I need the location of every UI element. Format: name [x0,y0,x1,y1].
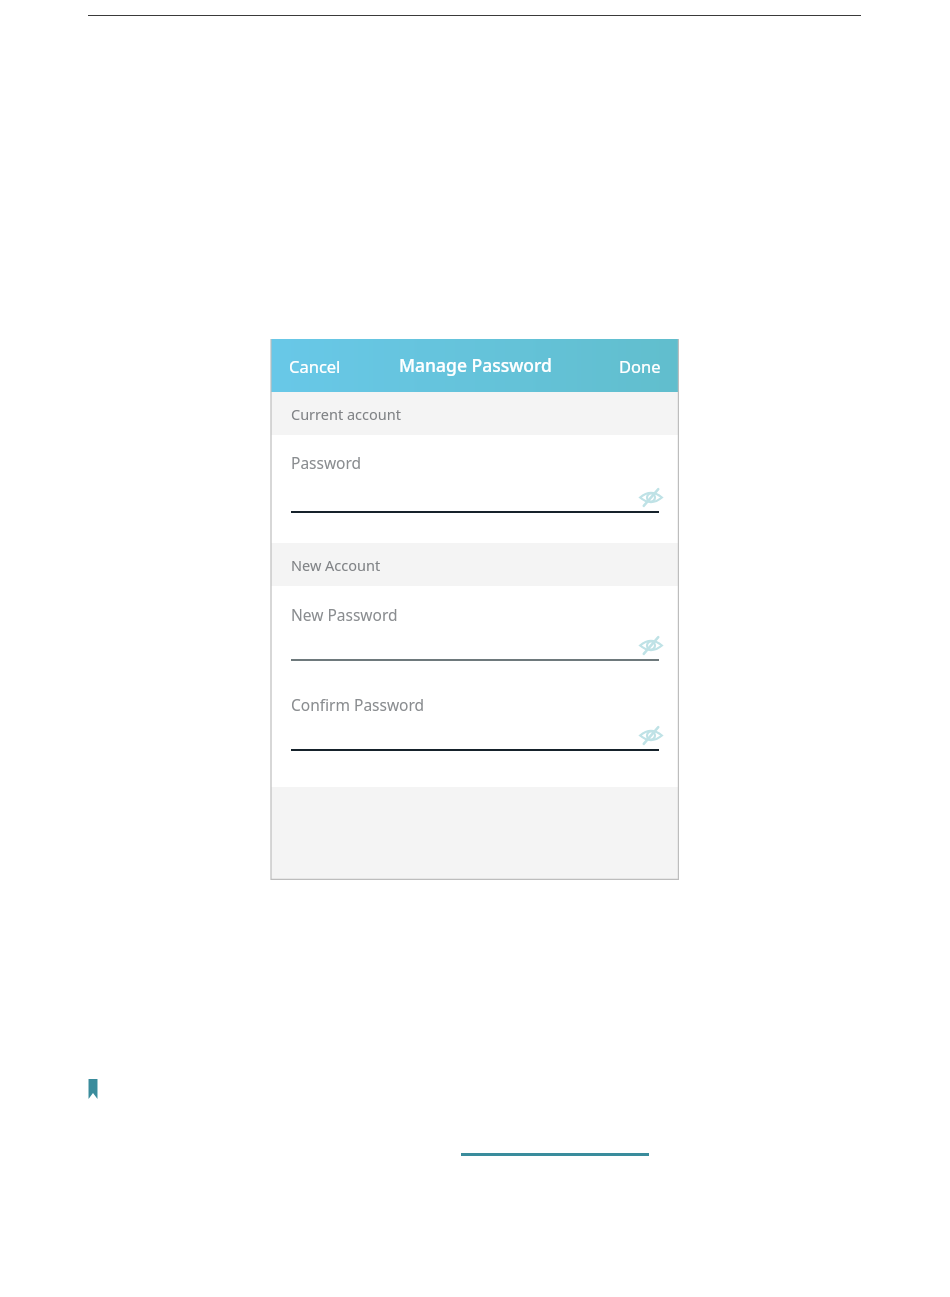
staticText: Current account [291,404,401,424]
staticText: Manage Password [399,353,552,377]
button[interactable]: Show password [638,726,664,745]
button[interactable]: Password [271,435,679,543]
staticText: Cancel [289,355,341,377]
button[interactable]: Show password [638,488,664,507]
button[interactable]: Bookmark [86,1079,100,1099]
button[interactable]: New Password [271,586,679,676]
staticText: Done [619,355,661,377]
button[interactable]: Done [601,343,679,389]
button[interactable]: Show password [638,636,664,655]
button[interactable]: Cancel [271,343,359,389]
staticText: New Password [291,604,398,625]
staticText: New Account [291,555,381,575]
button[interactable]: Confirm Password [271,676,679,787]
staticText: Confirm Password [291,694,425,715]
staticText: Password [291,452,362,473]
